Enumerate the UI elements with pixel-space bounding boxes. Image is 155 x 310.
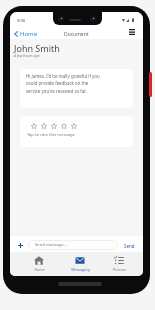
staticText: Send message... [35, 242, 67, 248]
button[interactable]: Home [20, 252, 58, 276]
staticText: John Smith [14, 42, 60, 54]
staticText: Home [20, 30, 38, 38]
button[interactable]: Menu [125, 25, 139, 39]
staticText: Home [34, 267, 45, 272]
button[interactable]: Home [11, 27, 41, 41]
staticText: Process [113, 267, 126, 272]
button[interactable]: Rate star [20, 116, 133, 147]
button[interactable]: Messaging [61, 252, 99, 276]
button[interactable]: Rate star [31, 123, 37, 129]
staticText: Messaging [71, 267, 90, 272]
button[interactable]: Hi James, I'd be really grateful if you … [20, 69, 133, 108]
staticText: Send [124, 243, 135, 249]
button[interactable]: Add attachment [15, 240, 25, 250]
staticText: A few hours ago [14, 53, 40, 58]
button[interactable]: Send message... [28, 240, 118, 250]
button[interactable]: Rate star [61, 123, 67, 129]
staticText: 9:00 [17, 18, 25, 23]
button[interactable]: Rate star [41, 123, 47, 129]
button[interactable]: Rate star [71, 123, 77, 129]
staticText: Document [64, 31, 89, 38]
button[interactable]: Process [100, 252, 138, 276]
button[interactable]: Send [121, 240, 138, 252]
button[interactable]: Rate star [51, 123, 57, 129]
staticText: Tap to rate this message [27, 132, 75, 138]
staticText: Hi James, I'd be really grateful if you … [26, 73, 102, 95]
